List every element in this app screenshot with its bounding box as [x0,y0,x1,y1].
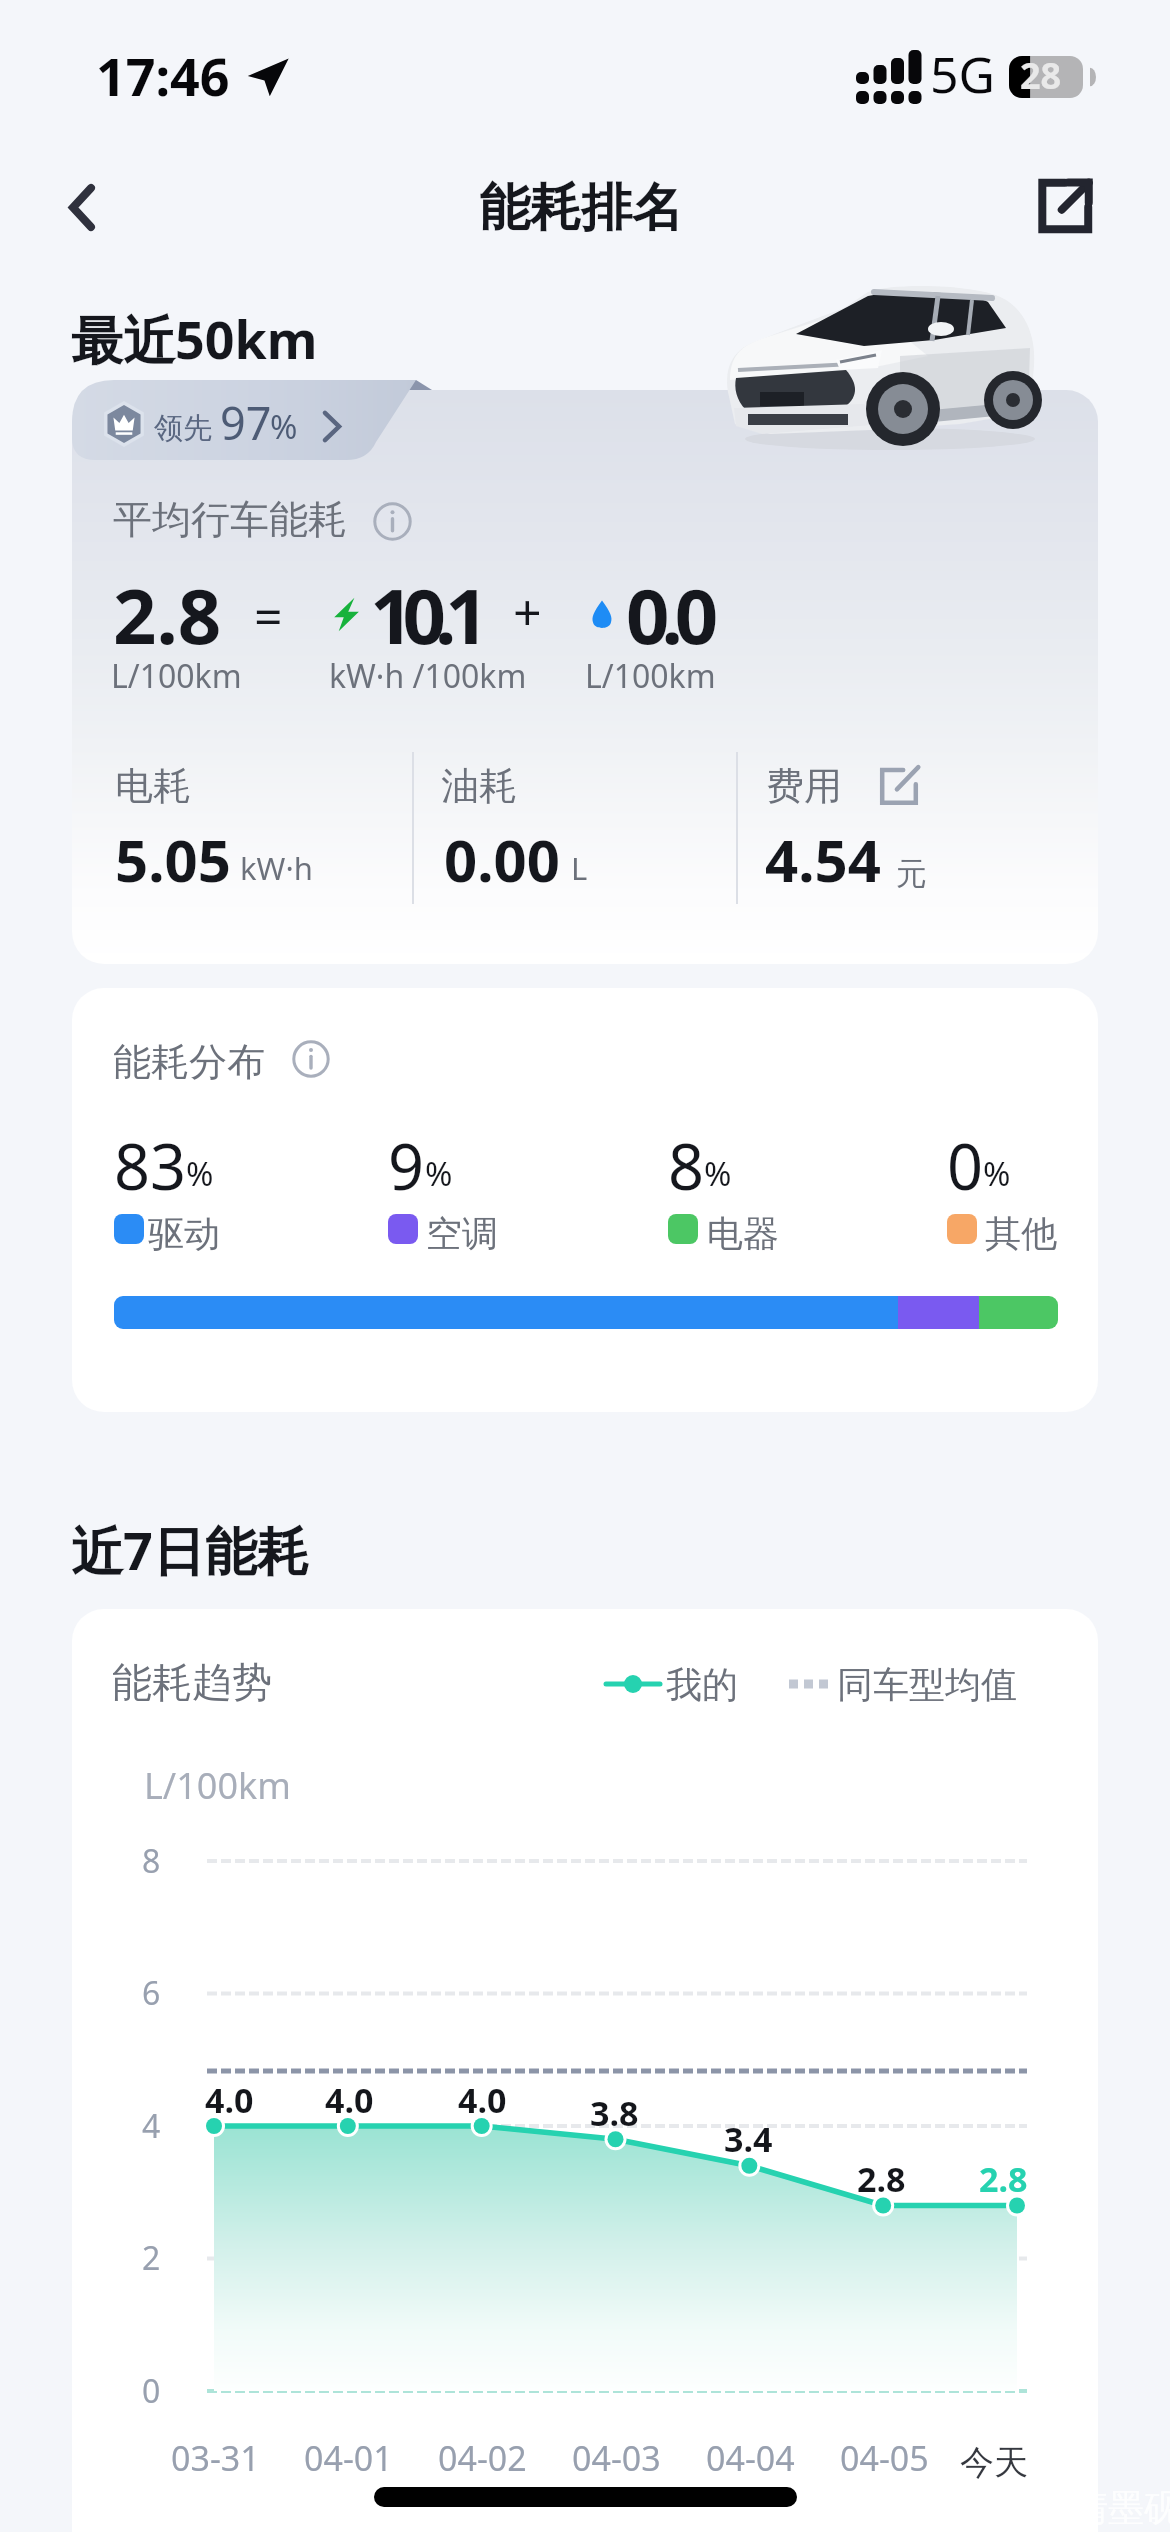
staticText: kW·h /100km [329,654,527,698]
staticText: 电耗 [115,762,191,810]
staticText: kW·h [240,847,313,889]
staticText: 04-02 [438,2435,527,2481]
staticText: 4.0 [458,2077,507,2123]
button[interactable]: 返回 [38,165,122,249]
staticText: % [983,1151,1011,1196]
staticText: 8 [142,1839,161,1883]
staticText: 2 [142,2236,161,2280]
staticText: L/100km [111,654,242,698]
staticText: % [704,1151,732,1196]
button[interactable]: 能耗分布说明 [285,1033,337,1085]
button[interactable]: 分享 [1023,164,1107,248]
staticText: L/100km [144,1761,291,1810]
staticText: 04-03 [572,2435,661,2481]
staticText: 8 [668,1123,705,1209]
staticText: 28 [1020,51,1062,100]
staticText: 0 [947,1123,984,1209]
staticText: + [513,577,542,645]
staticText: 驱动 [148,1211,220,1256]
staticText: 近7日能耗 [71,1514,309,1585]
staticText: 能耗分布 [113,1038,265,1086]
staticText: 17:46 [96,40,230,111]
staticText: L/100km [585,654,716,698]
staticText: 费用 [766,762,842,810]
staticText: % [425,1151,453,1196]
staticText: 5G [930,40,995,108]
staticText: 4.54 [765,820,881,899]
staticText: 0.00 [444,820,560,899]
staticText: 元 [896,854,927,893]
staticText: 同车型均值 [837,1662,1017,1707]
staticText: 9 [388,1123,425,1209]
staticText: 04-01 [304,2435,393,2481]
staticText: L [571,847,588,889]
staticText: 0.0 [626,563,711,667]
staticText: 10.1 [370,563,478,667]
staticText: 83 [114,1123,187,1209]
staticText: 2.8 [979,2156,1028,2202]
staticText: 3.4 [724,2116,773,2162]
staticText: 03-31 [171,2435,260,2481]
staticText: 我的 [666,1662,738,1707]
staticText: 能耗排名 [479,176,683,240]
staticText: 5.05 [115,820,231,899]
staticText: = [254,582,283,650]
button[interactable]: 编辑费用 [873,760,925,812]
staticText: 电器 [707,1211,779,1256]
button[interactable]: 平均行车能耗说明 [366,495,418,547]
staticText: 今天 [960,2441,1028,2484]
staticText: 04-04 [706,2435,795,2481]
staticText: 3.8 [590,2090,639,2136]
staticText: 0 [142,2369,161,2413]
button[interactable] [72,380,416,460]
staticText: 平均行车能耗 [113,495,347,544]
staticText: 2.8 [857,2156,906,2202]
staticText: 最近50km [71,303,318,374]
staticText: 6 [142,1971,161,2015]
staticText: @清墨砚 [1040,2482,1170,2531]
staticText: 领先 [154,410,212,447]
staticText: % [270,404,298,449]
staticText: 空调 [426,1211,498,1256]
staticText: 能耗趋势 [112,1657,272,1707]
staticText: 4 [142,2104,161,2148]
staticText: 04-05 [840,2435,929,2481]
staticText: 油耗 [441,762,517,810]
staticText: 4.0 [205,2077,254,2123]
staticText: 97 [220,392,272,453]
staticText: 2.8 [113,563,222,667]
staticText: % [186,1151,214,1196]
staticText: 4.0 [325,2077,374,2123]
staticText: 其他 [985,1211,1057,1256]
